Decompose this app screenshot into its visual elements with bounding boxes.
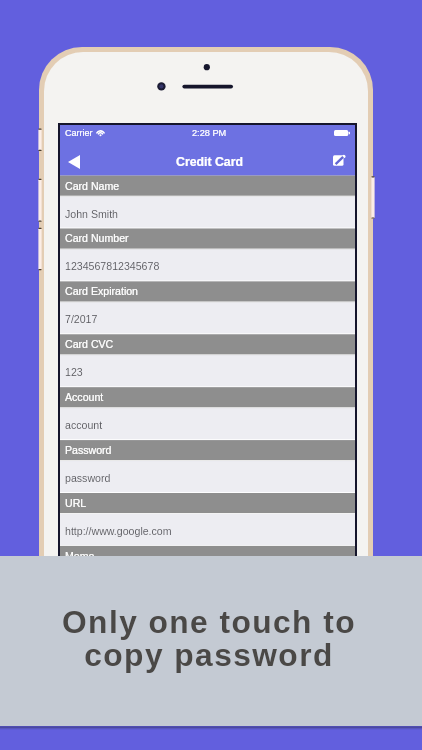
button[interactable]: 7/2017 [60, 302, 355, 334]
button[interactable]: password [60, 461, 355, 493]
staticText: 1234567812345678 [65, 260, 160, 272]
button[interactable]: John Smith [60, 197, 355, 229]
staticText: Credit Card [176, 155, 243, 169]
staticText: Only one touch to copy password [62, 604, 356, 673]
staticText: Card Name [65, 180, 120, 192]
staticText: Carrier [65, 128, 93, 138]
staticText: Card Expiration [65, 285, 139, 297]
staticText: 2:28 PM [192, 128, 227, 138]
staticText: Card Number [65, 232, 129, 244]
staticText: account [65, 419, 103, 431]
staticText: 7/2017 [65, 313, 98, 325]
staticText: 123 [65, 366, 83, 378]
staticText: Account [65, 391, 104, 403]
staticText: URL [65, 497, 87, 509]
button[interactable]: Back [60, 145, 88, 176]
staticText: John Smith [65, 208, 118, 220]
button[interactable]: 123 [60, 355, 355, 387]
staticText: Card CVC [65, 338, 114, 350]
button[interactable]: http://www.google.com [60, 514, 355, 546]
staticText: password [65, 472, 111, 484]
staticText: Password [65, 444, 112, 456]
button[interactable]: account [60, 408, 355, 440]
staticText: Memo [65, 550, 95, 562]
button[interactable]: Edit [329, 145, 355, 176]
staticText: http://www.google.com [65, 525, 172, 537]
button[interactable]: 1234567812345678 [60, 249, 355, 281]
